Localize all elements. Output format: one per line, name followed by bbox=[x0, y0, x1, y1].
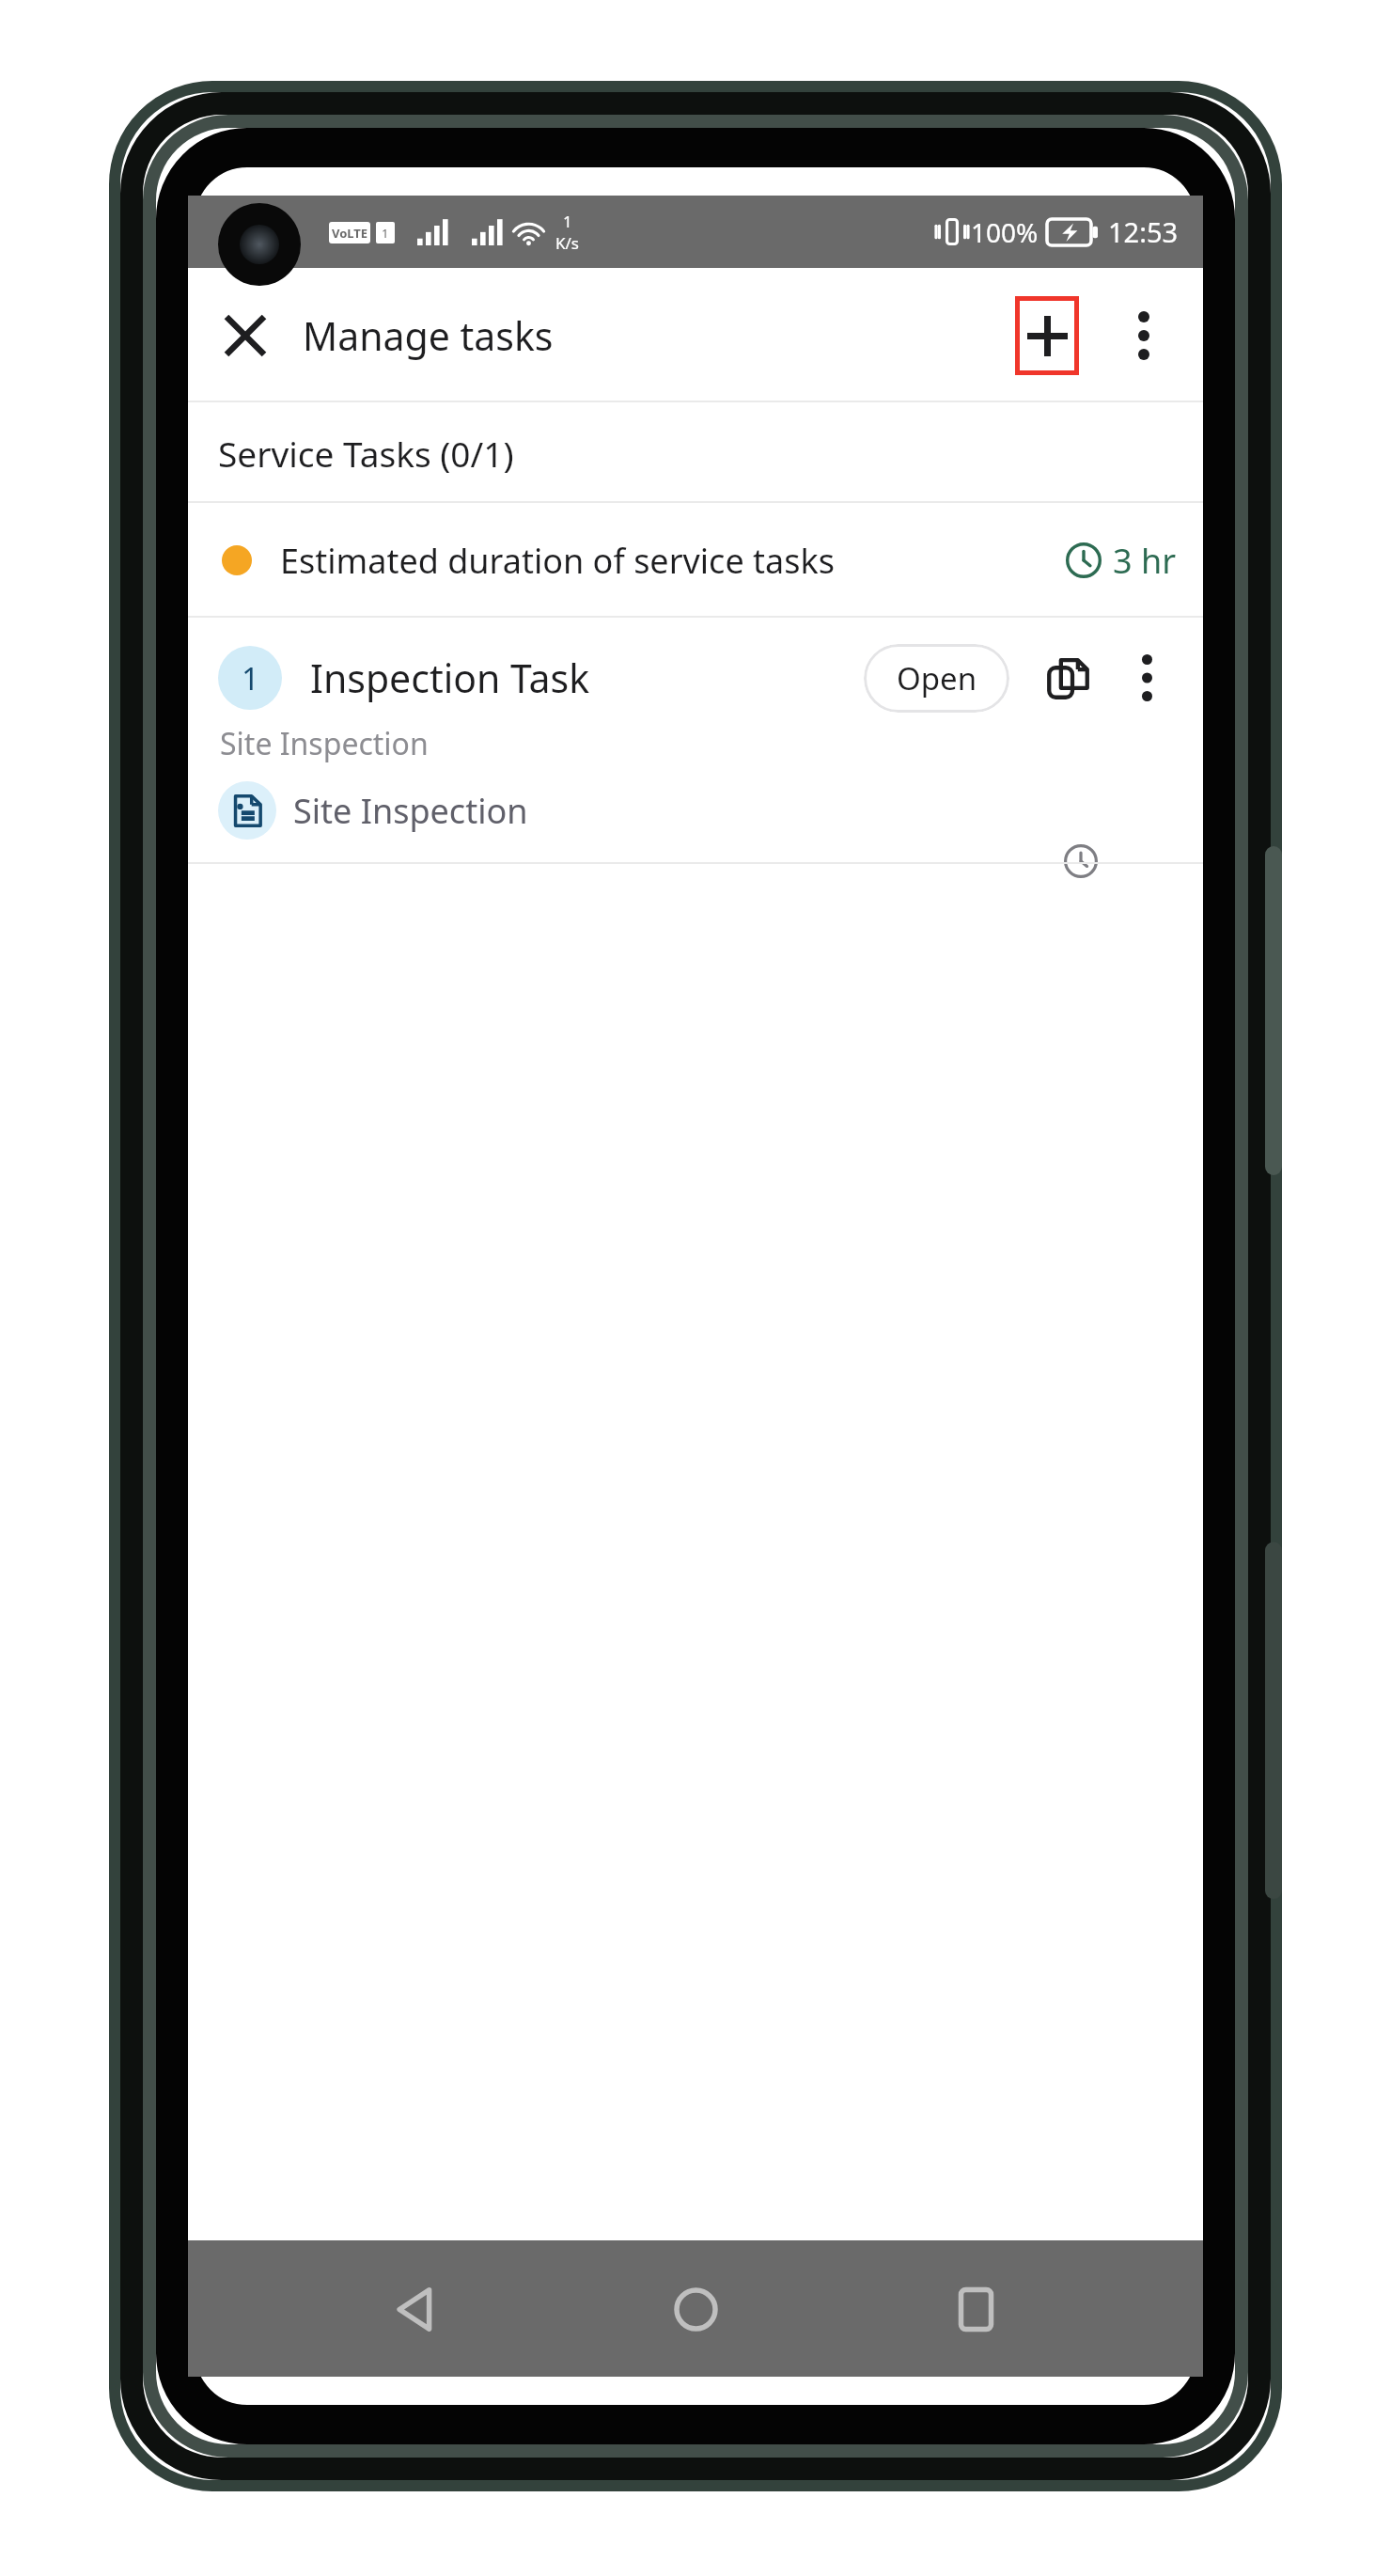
button[interactable]: Open bbox=[864, 644, 1009, 713]
staticText: K/s bbox=[555, 232, 579, 254]
button[interactable]: Task options bbox=[1113, 644, 1180, 712]
staticText: 3 hr bbox=[1113, 538, 1177, 584]
button[interactable]: Back bbox=[363, 2256, 468, 2362]
staticText: Site Inspection bbox=[293, 788, 528, 834]
staticText: Manage tasks bbox=[303, 309, 554, 362]
button[interactable]: Recent apps bbox=[923, 2256, 1028, 2362]
staticText: 12:53 bbox=[1108, 213, 1179, 250]
button[interactable]: Close bbox=[207, 297, 284, 374]
staticText: Service Tasks (0/1) bbox=[218, 430, 514, 477]
staticText: 1 bbox=[242, 657, 259, 699]
staticText: VoLTE bbox=[332, 225, 368, 242]
staticText: Not assigned bbox=[220, 858, 417, 864]
button[interactable]: More options bbox=[1107, 299, 1180, 372]
button[interactable]: Estimated duration of service tasks bbox=[188, 503, 1203, 618]
button[interactable]: Home bbox=[643, 2256, 748, 2362]
staticText: 1 bbox=[563, 211, 572, 232]
staticText: Open bbox=[897, 657, 977, 699]
staticText: Site Inspection bbox=[220, 723, 429, 764]
button[interactable]: 1 bbox=[188, 618, 1203, 864]
button[interactable]: Add task bbox=[1015, 296, 1079, 375]
button[interactable]: Duplicate task bbox=[1034, 644, 1102, 712]
staticText: 100% bbox=[971, 214, 1039, 250]
staticText: Inspection Task bbox=[310, 652, 590, 704]
staticText: Estimated duration of service tasks bbox=[280, 538, 835, 584]
staticText: 3 hr bbox=[1109, 858, 1173, 864]
staticText: 1 bbox=[382, 225, 389, 242]
